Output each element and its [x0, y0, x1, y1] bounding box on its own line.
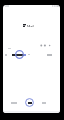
- button[interactable]: Toolbar actions: [40, 44, 54, 47]
- staticText: Mail: [27, 24, 35, 27]
- button[interactable]: App logo: [23, 24, 35, 27]
- button[interactable]: Toggle: [15, 50, 24, 59]
- button[interactable]: Record: [25, 98, 34, 107]
